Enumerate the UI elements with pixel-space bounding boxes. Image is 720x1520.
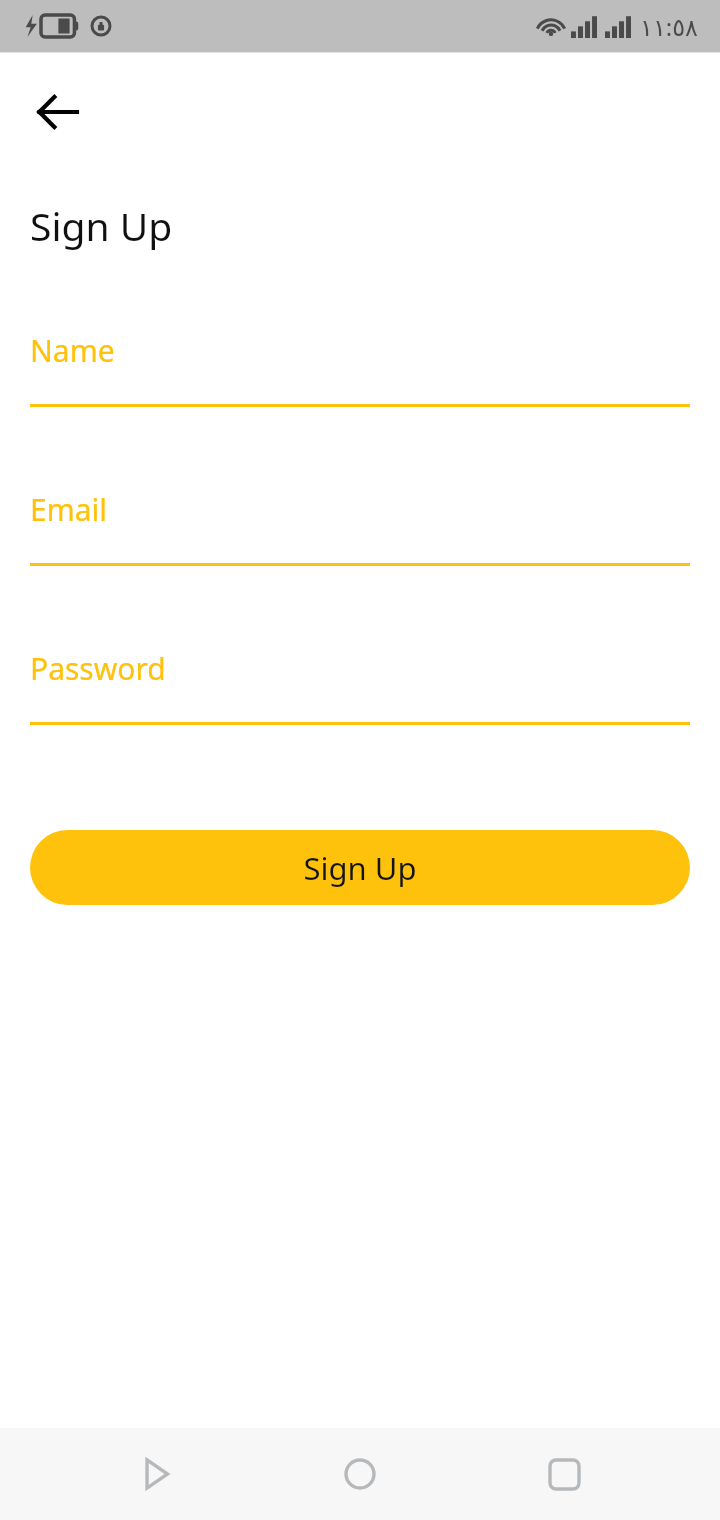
staticText: Password bbox=[30, 648, 166, 689]
button[interactable]: Home bbox=[312, 1428, 408, 1520]
button[interactable]: Back bbox=[108, 1428, 204, 1520]
staticText: Name bbox=[30, 330, 115, 371]
button[interactable]: Back bbox=[18, 75, 96, 149]
staticText: Sign Up bbox=[30, 199, 173, 252]
staticText: Sign Up bbox=[303, 847, 417, 889]
staticText: Email bbox=[30, 489, 108, 530]
staticText: ١١:٥٨ bbox=[640, 10, 698, 43]
button[interactable]: Sign Up bbox=[30, 830, 690, 905]
button[interactable]: Recent apps bbox=[516, 1428, 612, 1520]
